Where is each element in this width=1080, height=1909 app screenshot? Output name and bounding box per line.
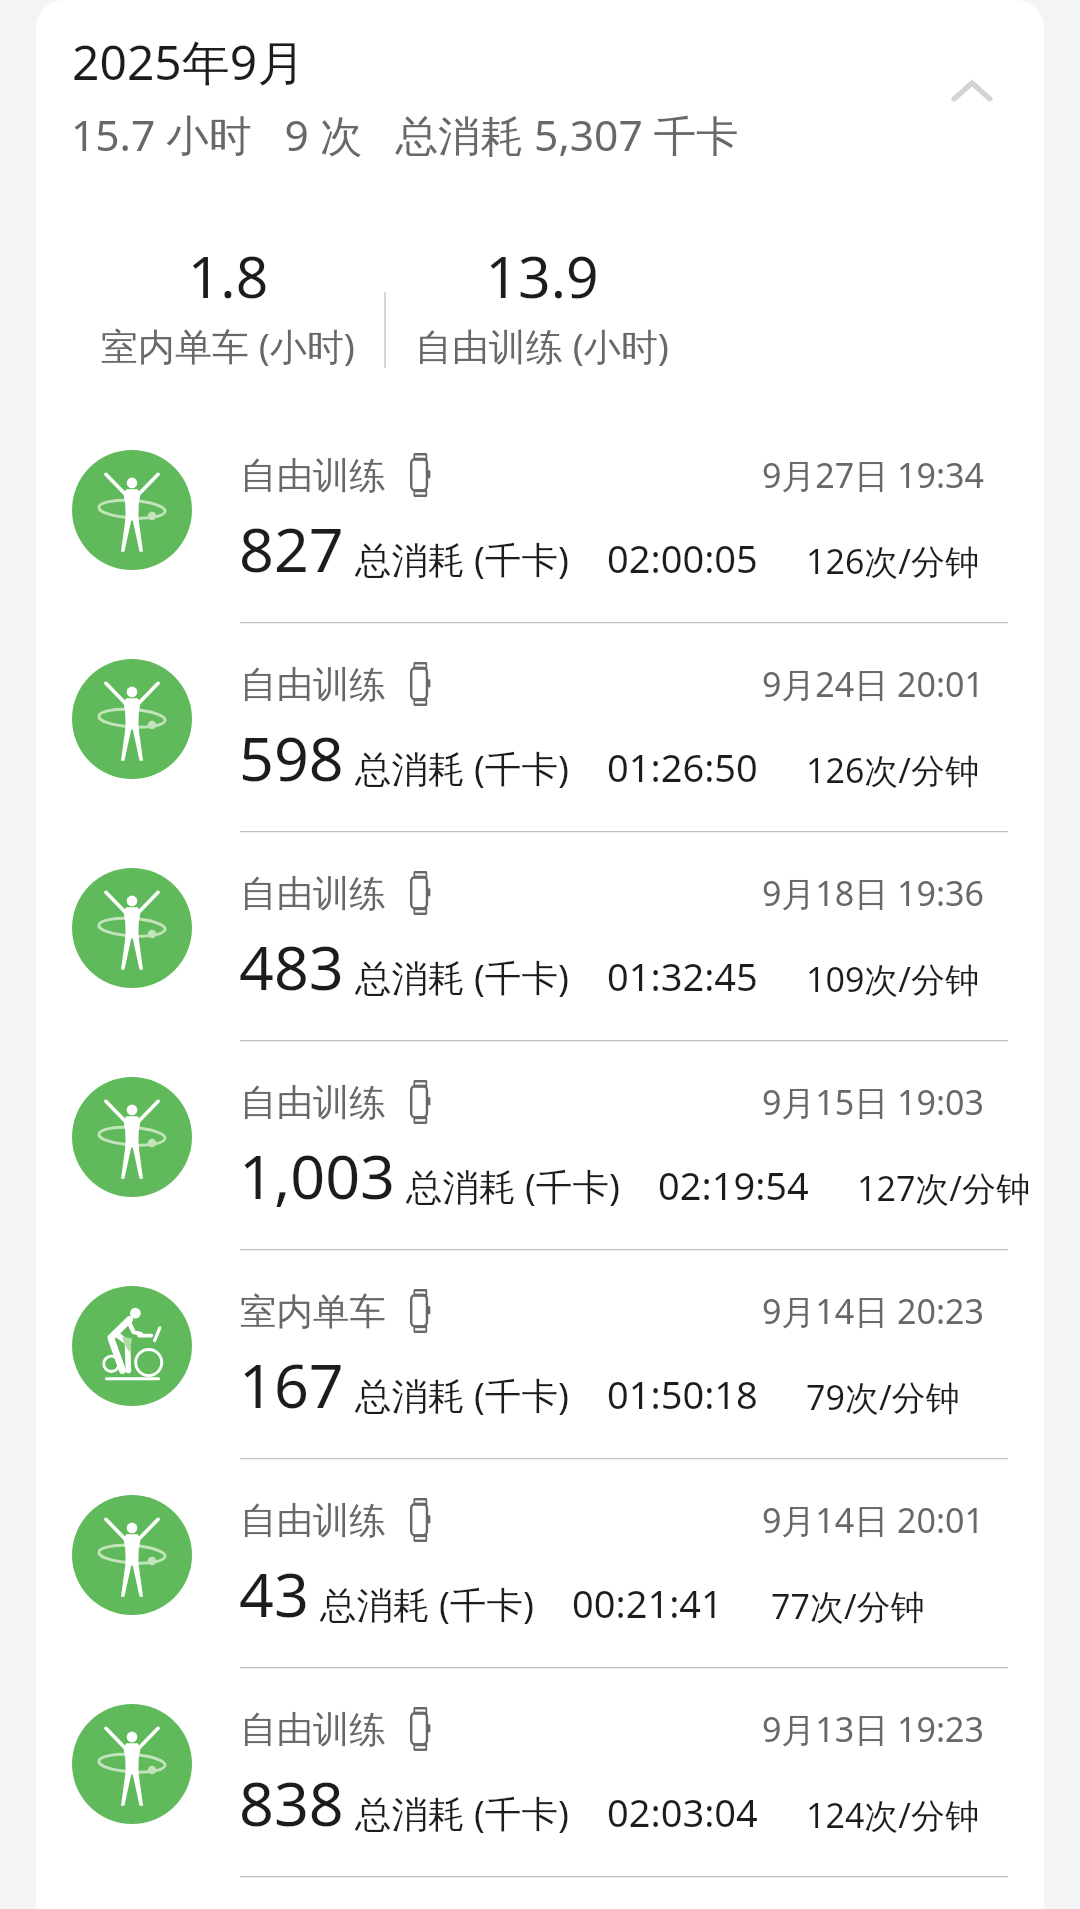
staticText: 02:00:05 <box>607 532 758 584</box>
button[interactable]: 2025年9月 <box>36 0 1044 414</box>
staticText: 9月15日 19:03 <box>682 1079 984 1125</box>
staticText: 02:03:04 <box>607 1786 758 1838</box>
staticText: 01:50:18 <box>607 1368 758 1420</box>
staticText: 827 <box>239 507 344 590</box>
staticText: 自由训练 (小时) <box>385 320 699 371</box>
button[interactable]: Collapse <box>928 47 1016 135</box>
button[interactable]: 自由训练 <box>36 623 1044 832</box>
button[interactable]: 自由训练 <box>36 414 1044 623</box>
staticText: 126次/分钟 <box>806 747 979 793</box>
staticText: 9月24日 20:01 <box>682 661 984 707</box>
button[interactable]: 自由训练 <box>36 1668 1044 1877</box>
staticText: 1.8 <box>71 237 385 315</box>
staticText: 127次/分钟 <box>857 1165 1030 1211</box>
staticText: 自由训练 <box>240 662 386 708</box>
staticText: 总消耗 (千卡) <box>320 1579 534 1629</box>
staticText: 自由训练 <box>240 1498 386 1544</box>
staticText: 13.9 <box>385 237 699 315</box>
staticText: 598 <box>239 716 344 799</box>
staticText: 9月13日 19:23 <box>682 1706 984 1752</box>
staticText: 自由训练 <box>240 453 386 499</box>
staticText: 9月14日 20:01 <box>682 1497 984 1543</box>
staticText: 2025年9月 <box>72 29 306 95</box>
staticText: 总消耗 (千卡) <box>355 952 569 1002</box>
staticText: 9月18日 19:36 <box>682 870 984 916</box>
staticText: 79次/分钟 <box>806 1374 960 1420</box>
staticText: 自由训练 <box>240 871 386 917</box>
staticText: 00:21:41 <box>572 1577 723 1629</box>
staticText: 总消耗 (千卡) <box>406 1161 620 1211</box>
button[interactable]: 自由训练 <box>36 1041 1044 1250</box>
staticText: 室内单车 (小时) <box>71 320 385 371</box>
staticText: 109次/分钟 <box>806 956 979 1002</box>
staticText: 167 <box>239 1343 344 1426</box>
button[interactable]: 13.9 <box>385 237 699 315</box>
staticText: 总消耗 (千卡) <box>355 743 569 793</box>
staticText: 01:26:50 <box>607 741 758 793</box>
staticText: 01:32:45 <box>607 950 758 1002</box>
button[interactable]: 自由训练 <box>36 1459 1044 1668</box>
staticText: 自由训练 <box>240 1080 386 1126</box>
staticText: 124次/分钟 <box>806 1792 979 1838</box>
staticText: 1,003 <box>239 1134 395 1217</box>
staticText: 总消耗 (千卡) <box>355 1788 569 1838</box>
staticText: 15.7 小时 9 次 总消耗 5,307 千卡 <box>71 106 739 164</box>
staticText: 总消耗 (千卡) <box>355 534 569 584</box>
staticText: 室内单车 <box>240 1289 386 1335</box>
staticText: 9月27日 19:34 <box>682 452 984 498</box>
staticText: 483 <box>239 925 344 1008</box>
staticText: 02:19:54 <box>658 1159 809 1211</box>
button[interactable]: 1.8 <box>71 237 385 315</box>
staticText: 77次/分钟 <box>771 1583 925 1629</box>
staticText: 自由训练 <box>240 1707 386 1753</box>
staticText: 9月14日 20:23 <box>682 1288 984 1334</box>
staticText: 总消耗 (千卡) <box>355 1370 569 1420</box>
staticText: 838 <box>239 1761 344 1844</box>
button[interactable]: 室内单车 <box>36 1250 1044 1459</box>
staticText: 126次/分钟 <box>806 538 979 584</box>
button[interactable]: 自由训练 <box>36 832 1044 1041</box>
staticText: 43 <box>239 1552 309 1635</box>
